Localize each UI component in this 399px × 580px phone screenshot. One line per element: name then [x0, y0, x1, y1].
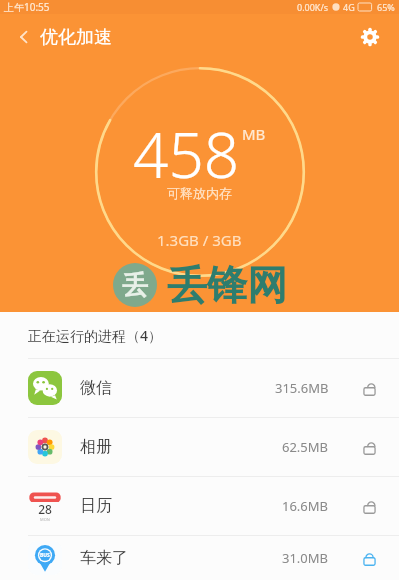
- staticText: 16.6MB: [282, 497, 329, 515]
- staticText: 458: [133, 112, 240, 196]
- staticText: 31.0MB: [282, 549, 329, 567]
- staticText: MON: [40, 517, 50, 522]
- staticText: MB: [242, 124, 266, 144]
- staticText: 丢: [122, 269, 148, 302]
- staticText: BUS: [40, 552, 50, 559]
- staticText: 微信: [80, 378, 112, 398]
- staticText: 0.00K/s: [297, 1, 329, 13]
- button[interactable]: Unlocked: [355, 433, 383, 461]
- button[interactable]: Unlocked: [355, 374, 383, 402]
- staticText: 28: [38, 501, 52, 517]
- staticText: 4G: [343, 1, 355, 13]
- staticText: 62.5MB: [282, 438, 329, 456]
- staticText: 上午10:55: [4, 0, 50, 14]
- staticText: 可释放内存: [167, 185, 232, 201]
- staticText: 日历: [80, 496, 112, 516]
- staticText: 优化加速: [40, 26, 112, 49]
- staticText: 丢锋网: [167, 260, 287, 310]
- button[interactable]: Settings: [351, 18, 389, 56]
- staticText: 1.3GB / 3GB: [157, 230, 242, 250]
- button[interactable]: Back: [6, 19, 42, 55]
- staticText: 相册: [80, 437, 112, 457]
- button[interactable]: 微信: [0, 359, 399, 417]
- staticText: 65%: [377, 1, 395, 13]
- button[interactable]: BUS: [0, 536, 399, 580]
- button[interactable]: Locked: [355, 544, 383, 572]
- staticText: 正在运行的进程（4）: [28, 326, 163, 345]
- button[interactable]: 相册: [0, 418, 399, 476]
- staticText: 315.6MB: [275, 379, 329, 397]
- staticText: 车来了: [80, 548, 128, 568]
- button[interactable]: 28: [0, 477, 399, 535]
- button[interactable]: Unlocked: [355, 492, 383, 520]
